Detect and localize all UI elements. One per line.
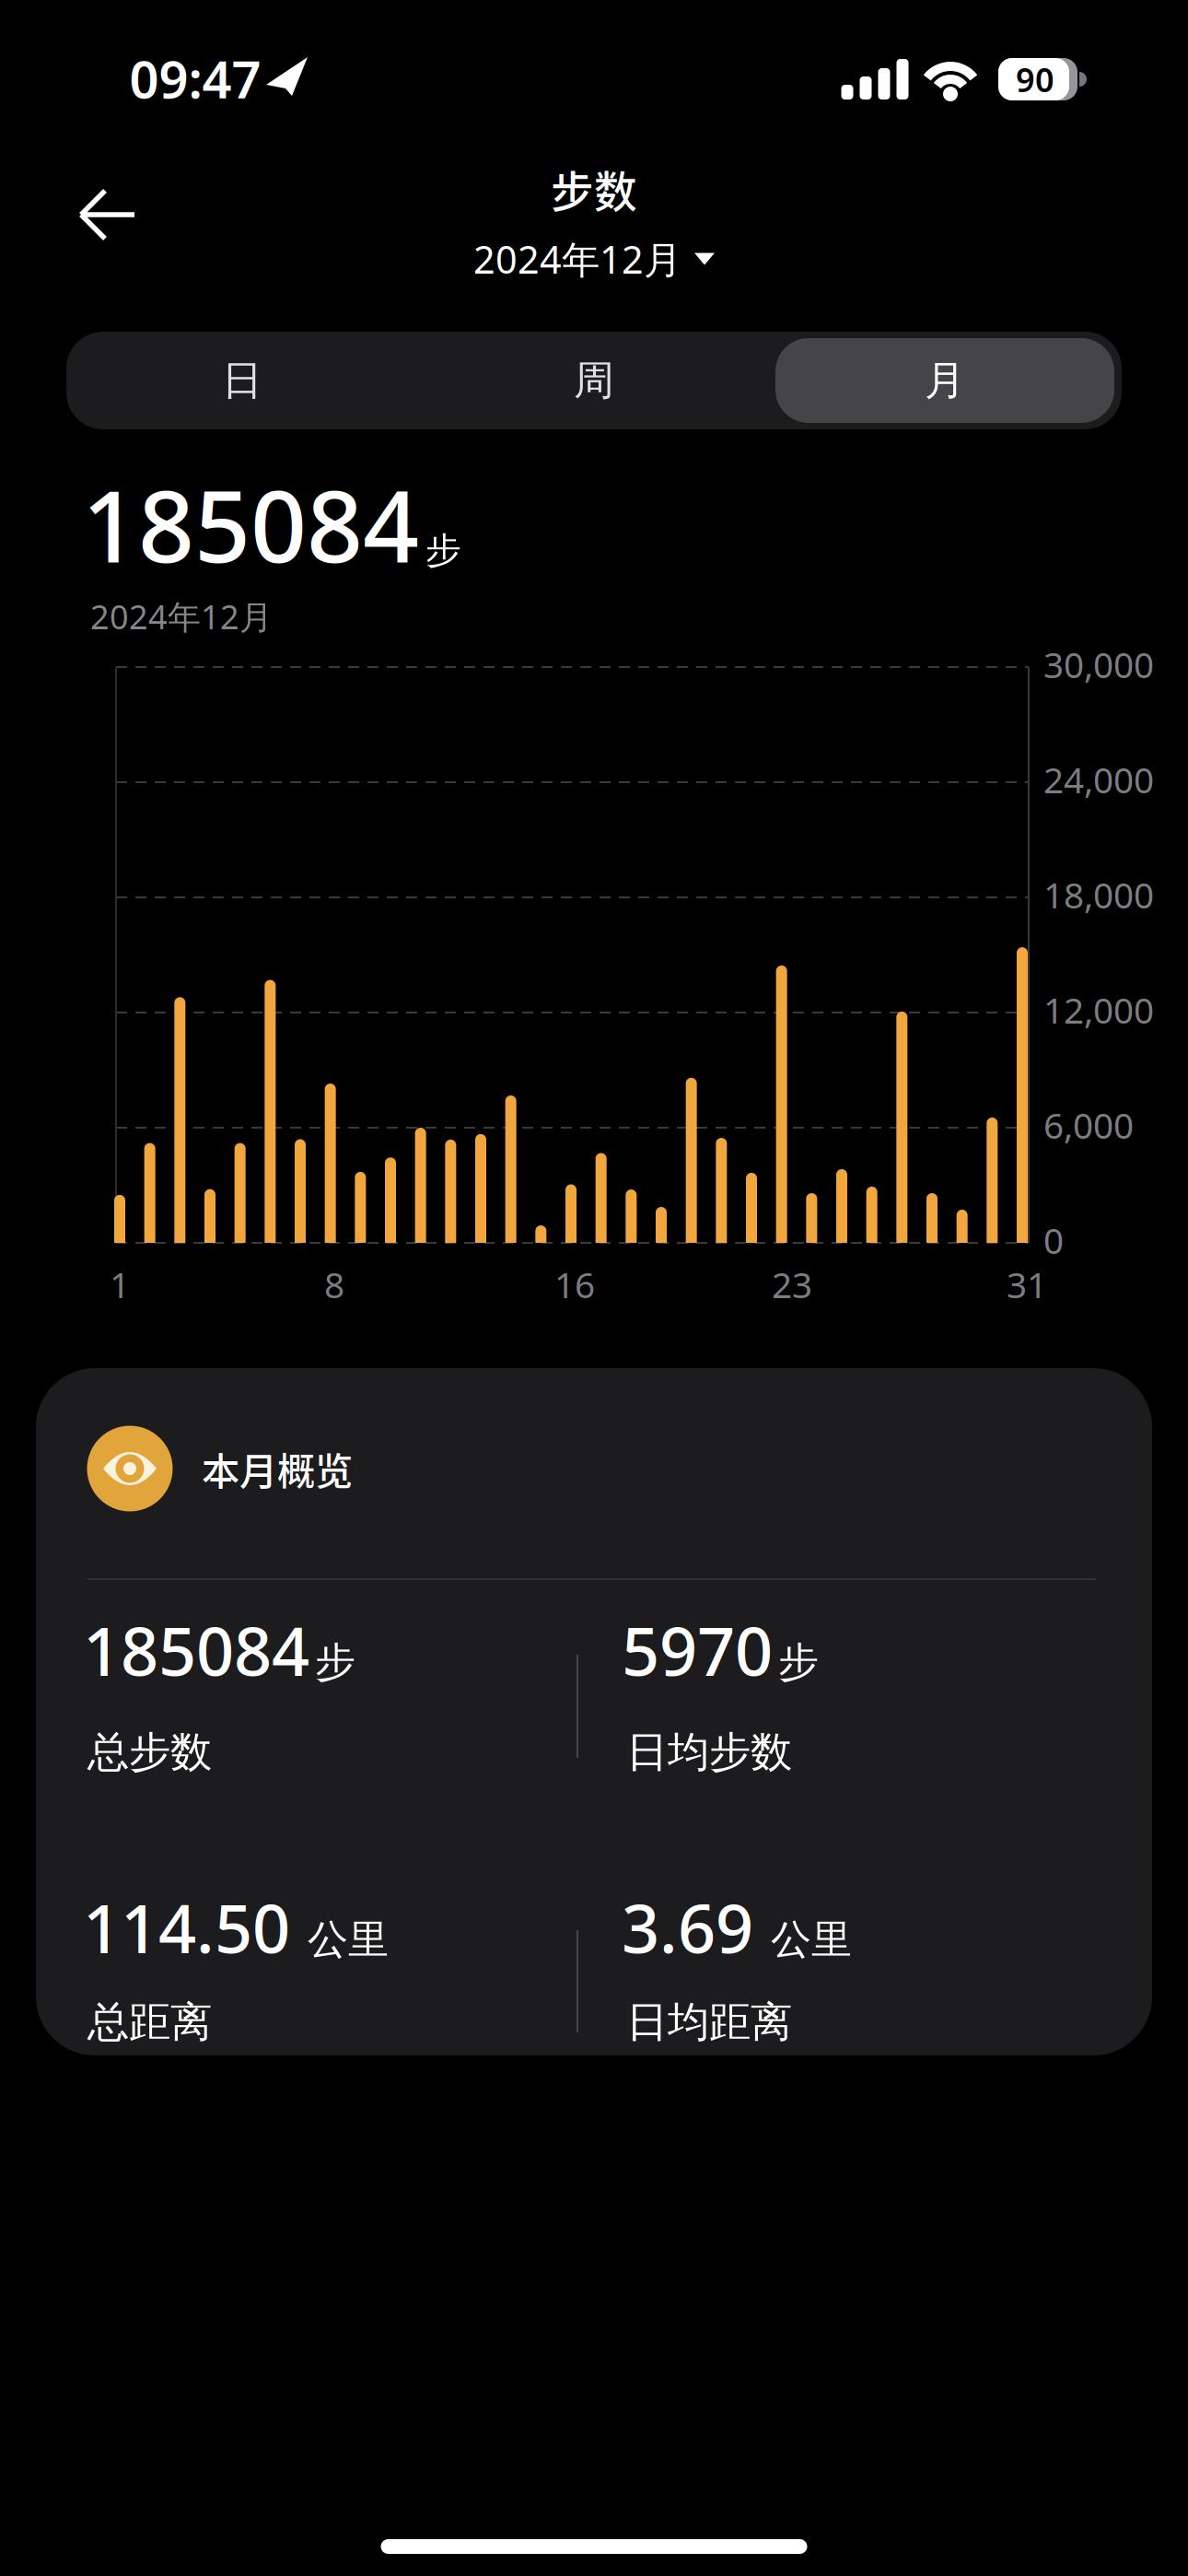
staticText: 185084 [82, 459, 419, 589]
staticText: 90 [1016, 57, 1054, 101]
staticText: 114.50 [83, 1883, 290, 1971]
staticText: 周 [574, 356, 614, 405]
staticText: 日均距离 [626, 1997, 792, 2048]
staticText: 2024年12月 [473, 234, 681, 284]
staticText: 16 [554, 1261, 595, 1308]
staticText: 步 [778, 1637, 819, 1687]
staticText: 总步数 [87, 1727, 212, 1778]
staticText: 总距离 [87, 1997, 212, 2048]
staticText: 6,000 [1043, 1101, 1134, 1149]
staticText: 步 [315, 1637, 355, 1687]
staticText: 3.69 [622, 1883, 753, 1971]
staticText: 月 [925, 356, 965, 405]
staticText: 18,000 [1043, 871, 1154, 918]
staticText: 8 [324, 1261, 344, 1308]
button[interactable]: 日 [67, 332, 417, 429]
staticText: 12,000 [1043, 986, 1154, 1033]
staticText: 1 [110, 1261, 130, 1308]
staticText: 日 [222, 356, 262, 405]
staticText: 23 [772, 1261, 812, 1308]
button[interactable]: 月 [770, 332, 1120, 429]
staticText: 30,000 [1043, 641, 1154, 688]
staticText: 0 [1043, 1216, 1064, 1264]
staticText: 公里 [296, 1915, 389, 1965]
staticText: 185084 [83, 1606, 309, 1694]
staticText: 31 [1007, 1261, 1047, 1308]
staticText: 公里 [759, 1915, 852, 1965]
button[interactable]: 选择日期 [473, 234, 715, 284]
button[interactable]: 周 [419, 332, 769, 429]
staticText: 步数 [551, 159, 637, 219]
staticText: 09:47 [129, 44, 261, 113]
staticText: 日均步数 [626, 1727, 792, 1778]
staticText: 24,000 [1043, 756, 1154, 803]
button[interactable]: Back [53, 164, 155, 265]
staticText: 本月概览 [202, 1442, 353, 1495]
staticText: 2024年12月 [90, 594, 273, 638]
staticText: 5970 [622, 1606, 773, 1694]
staticText: 步 [425, 529, 461, 572]
